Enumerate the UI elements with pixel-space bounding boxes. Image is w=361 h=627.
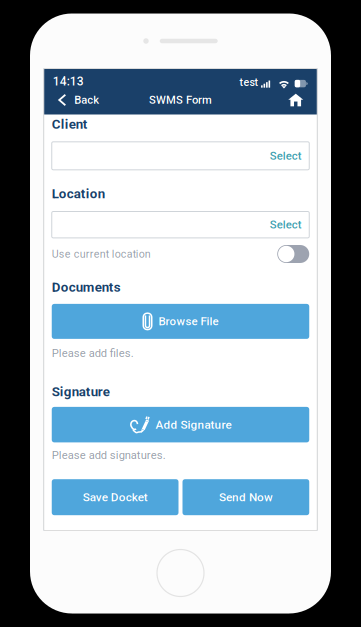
staticText: test (240, 76, 259, 88)
staticText: Signature (52, 384, 110, 399)
staticText: Please add signatures. (52, 448, 166, 462)
staticText: Send Now (219, 490, 273, 504)
staticText: Select (270, 218, 302, 231)
button[interactable]: Browse File (52, 304, 309, 339)
staticText: Use current location (52, 248, 151, 260)
staticText: Client (52, 116, 88, 132)
staticText: Save Docket (83, 490, 148, 504)
button[interactable]: Select (52, 211, 309, 238)
button[interactable]: Home (280, 92, 311, 107)
staticText: Location (52, 186, 105, 201)
button[interactable]: Select (52, 142, 309, 170)
button[interactable]: Back (50, 92, 106, 107)
button[interactable]: Add Signature (52, 407, 309, 442)
button[interactable]: Send Now (182, 479, 309, 515)
staticText: Back (74, 93, 99, 106)
staticText: Select (270, 149, 302, 162)
staticText: Add Signature (155, 418, 231, 432)
staticText: Please add files. (52, 346, 134, 360)
staticText: Browse File (158, 315, 218, 328)
staticText: Documents (52, 279, 121, 295)
staticText: SWMS Form (149, 93, 212, 106)
button[interactable]: Save Docket (52, 479, 179, 515)
staticText: 14:13 (53, 74, 84, 88)
button[interactable]: Use current location (277, 245, 309, 263)
